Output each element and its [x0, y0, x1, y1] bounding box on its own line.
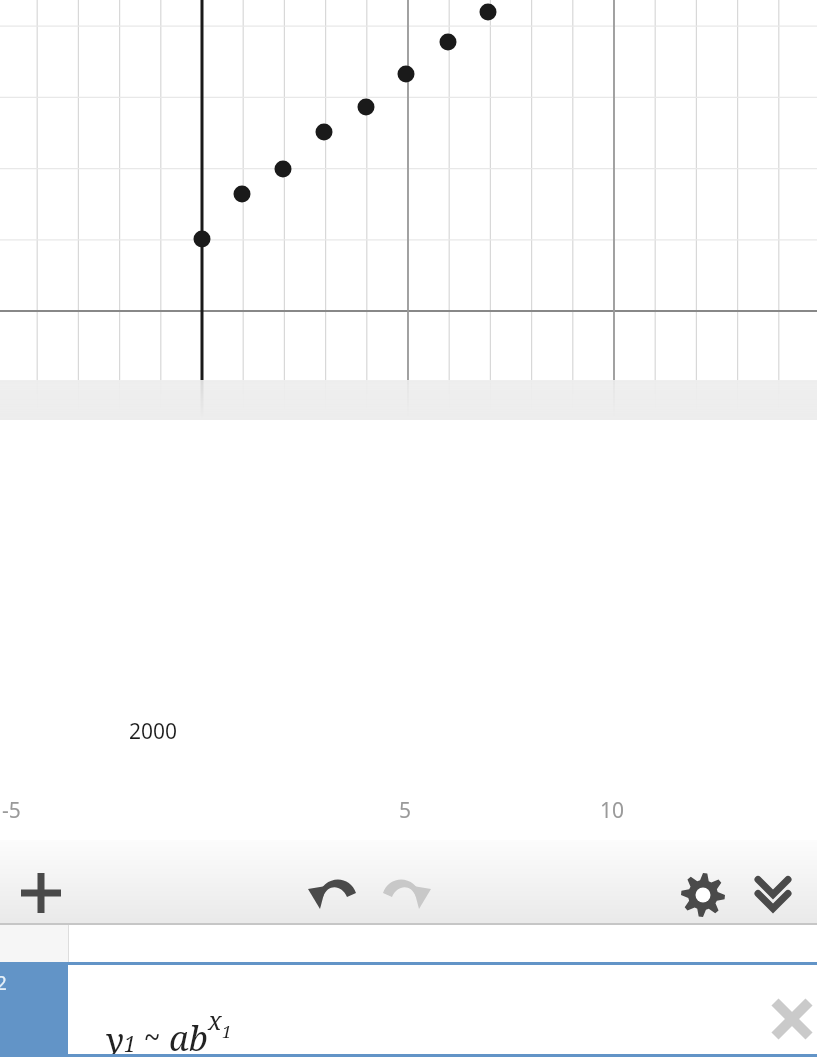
button[interactable]: Collapse keypad [746, 868, 800, 922]
staticText: -5 [2, 796, 21, 825]
staticText: 10 [600, 796, 625, 825]
staticText: 2000 [129, 717, 178, 746]
button[interactable]: Add expression [10, 862, 72, 924]
button[interactable]: Undo [305, 866, 363, 924]
staticText: 1 [124, 1030, 136, 1057]
staticText: 2 [0, 970, 7, 996]
staticText: ab [169, 1015, 208, 1057]
button[interactable]: Redo [376, 866, 434, 924]
staticText: 5 [399, 796, 412, 825]
button[interactable]: Delete expression [762, 989, 817, 1049]
staticText: y [106, 1017, 124, 1057]
staticText: ~ [136, 1016, 169, 1057]
button[interactable]: Settings [676, 868, 730, 922]
button[interactable]: 2 [0, 962, 68, 1057]
staticText: 1 [222, 1020, 232, 1043]
staticText: x [208, 1003, 222, 1037]
